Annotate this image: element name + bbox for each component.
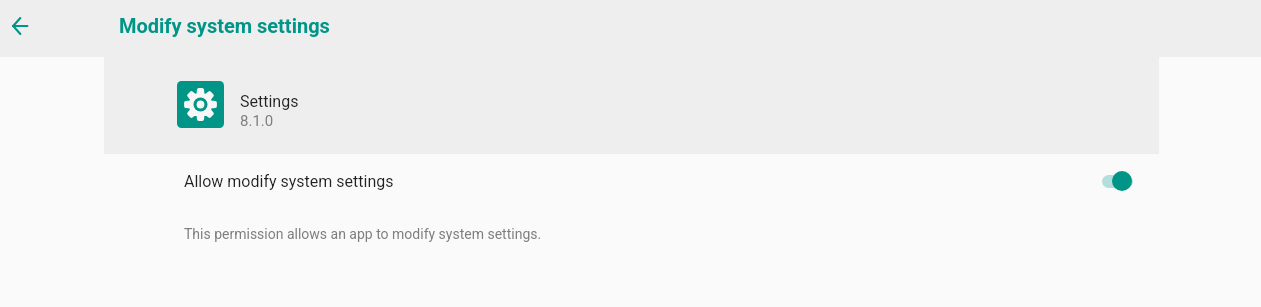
button[interactable]: Allow modify system settings, on	[1100, 159, 1156, 203]
button[interactable]: Allow modify system settings	[0, 157, 1261, 205]
staticText: Allow modify system settings	[184, 172, 394, 191]
staticText: Modify system settings	[119, 14, 330, 37]
staticText: 8.1.0	[240, 112, 274, 130]
staticText: This permission allows an app to modify …	[184, 226, 542, 242]
button[interactable]	[104, 57, 1159, 154]
button[interactable]: Navigate up	[0, 5, 40, 46]
staticText: Settings	[240, 92, 299, 111]
